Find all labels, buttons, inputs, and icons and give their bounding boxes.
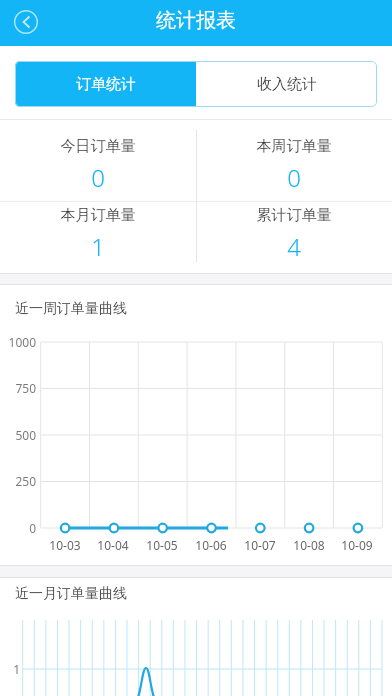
button[interactable]: 收入统计 — [196, 61, 377, 107]
staticText: 1000 — [0, 334, 36, 350]
staticText: 收入统计 — [257, 75, 317, 94]
staticText: 累计订单量 — [196, 206, 392, 225]
staticText: 本周订单量 — [196, 137, 392, 156]
staticText: 订单统计 — [76, 75, 136, 94]
staticText: 0 — [0, 520, 36, 536]
staticText: 近一月订单量曲线 — [15, 585, 215, 603]
staticText: 1 — [0, 230, 196, 263]
button[interactable] — [10, 6, 44, 40]
button[interactable] — [0, 120, 196, 201]
staticText: 10-07 — [236, 537, 284, 553]
button[interactable]: 订单统计 — [15, 61, 196, 107]
staticText: 250 — [0, 473, 36, 489]
staticText: 10-05 — [138, 537, 186, 553]
staticText: 今日订单量 — [0, 137, 196, 156]
staticText: 0 — [196, 161, 392, 194]
staticText: 10-06 — [187, 537, 235, 553]
staticText: 500 — [0, 427, 36, 443]
staticText: 10-03 — [41, 537, 89, 553]
staticText: 10-08 — [285, 537, 333, 553]
button[interactable] — [0, 202, 196, 274]
staticText: 0 — [0, 161, 196, 194]
staticText: 10-04 — [89, 537, 137, 553]
staticText: 统计报表 — [0, 8, 392, 33]
button[interactable] — [196, 120, 392, 201]
staticText: 750 — [0, 380, 36, 396]
staticText: 4 — [196, 230, 392, 263]
staticText: 近一周订单量曲线 — [15, 300, 215, 318]
staticText: 本月订单量 — [0, 206, 196, 225]
button[interactable] — [196, 202, 392, 274]
staticText: 1 — [0, 661, 20, 677]
staticText: 10-09 — [333, 537, 381, 553]
